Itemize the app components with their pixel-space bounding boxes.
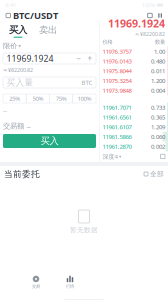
button[interactable]: 行情 — [53, 274, 87, 290]
button[interactable]: BTC/USDT — [3, 7, 61, 24]
button[interactable]: 交易 — [19, 274, 53, 290]
staticText: 交易额 — [3, 122, 24, 130]
staticText: 11961.7071 — [103, 103, 132, 111]
staticText: -- — [3, 107, 7, 114]
staticText: 11976.3757 — [103, 47, 132, 55]
staticText: 0.733 — [151, 103, 165, 111]
button[interactable]: 限价 — [3, 42, 96, 50]
staticText: 卖出 — [39, 24, 57, 35]
staticText: 0.002 — [151, 143, 165, 150]
staticText: 100% — [77, 95, 91, 102]
staticText: − — [76, 53, 81, 64]
staticText: 11961.2870 — [103, 143, 132, 150]
staticText: 1.200 — [151, 77, 165, 85]
button[interactable]: Depth settings — [160, 154, 165, 159]
staticText: 限价 — [3, 42, 17, 50]
staticText: 11961.6561 — [103, 113, 132, 121]
staticText: BTC — [81, 79, 92, 86]
staticText: 0.365 — [151, 113, 165, 121]
staticText: 100% — [141, 1, 155, 9]
staticText: 买入 — [40, 135, 58, 147]
staticText: 0.004 — [151, 87, 165, 94]
staticText: 买入量 — [6, 77, 33, 88]
staticText: 全部 — [150, 170, 164, 178]
staticText: ≈ ¥82200.82 — [135, 31, 165, 37]
staticText: + — [87, 53, 92, 64]
staticText: ▾ — [18, 43, 20, 49]
staticText: 暂无数据 — [70, 226, 98, 234]
button[interactable]: Chart — [145, 10, 155, 21]
staticText: 交易 — [32, 284, 40, 289]
staticText: 1.209 — [151, 123, 165, 131]
staticText: -- — [26, 121, 30, 131]
staticText: ≈ ¥82200.82 — [3, 66, 33, 73]
staticText: 11969.1924 — [6, 53, 53, 64]
button[interactable]: More — [155, 10, 165, 21]
staticText: 买入 — [9, 24, 27, 35]
staticText: ▾ — [119, 154, 121, 159]
button[interactable]: 100% — [73, 94, 96, 103]
staticText: 11973.9848 — [103, 87, 132, 94]
staticText: 11961.6107 — [103, 123, 132, 131]
staticText: 当前委托 — [4, 169, 40, 179]
staticText: BTC/USDT — [13, 9, 58, 22]
staticText: 50% — [32, 95, 43, 102]
button[interactable]: 卖出 — [33, 24, 63, 38]
button[interactable]: 深度4 — [103, 152, 121, 160]
staticText: 深度4 — [103, 152, 118, 160]
staticText: 0.480 — [151, 57, 165, 65]
button[interactable]: 75% — [49, 94, 73, 103]
staticText: 价格 — [103, 39, 113, 45]
button[interactable]: 25% — [3, 94, 26, 103]
staticText: 11969.1924 — [108, 17, 165, 30]
button[interactable]: 买入 — [3, 134, 96, 148]
button[interactable]: 买入 — [3, 24, 33, 38]
staticText: 11976.0143 — [103, 57, 132, 65]
staticText: 9:41 — [5, 1, 16, 9]
staticText: 75% — [56, 95, 67, 102]
staticText: 数量 — [155, 39, 165, 45]
staticText: 11975.3254 — [103, 77, 132, 85]
staticText: 11975.8044 — [103, 67, 132, 75]
button[interactable]: 50% — [26, 94, 49, 103]
staticText: 0.011 — [151, 67, 165, 75]
staticText: 1.00 — [154, 47, 165, 55]
staticText: 行情 — [66, 284, 74, 289]
staticText: 25% — [9, 95, 20, 102]
button[interactable]: 全部 — [144, 170, 164, 178]
staticText: 0.060 — [151, 133, 165, 141]
staticText: 11961.5866 — [103, 133, 132, 141]
